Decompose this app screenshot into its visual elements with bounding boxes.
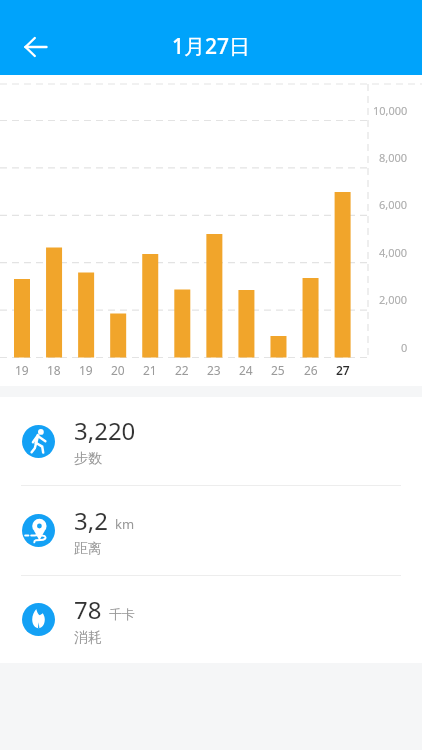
staticText: 20 [111,362,125,378]
staticText: 10,000 [373,103,408,118]
staticText: 18 [47,362,61,378]
staticText: 6,000 [379,197,408,212]
button[interactable]: 78 [0,576,422,663]
staticText: 27 [336,362,350,378]
staticText: km [115,515,135,533]
staticText: 23 [207,362,221,378]
staticText: 22 [175,362,189,378]
staticText: 21 [143,362,157,378]
staticText: 消耗 [74,629,102,647]
staticText: 24 [239,362,253,378]
staticText: 3,220 [74,414,136,447]
staticText: 1月27日 [172,32,251,61]
button[interactable]: 3,220 [0,397,422,485]
staticText: 4,000 [379,245,408,260]
staticText: 19 [15,362,29,378]
staticText: 26 [304,362,318,378]
staticText: 步数 [74,450,102,468]
staticText: 千卡 [109,606,135,622]
staticText: 25 [271,362,285,378]
staticText: 78 [74,593,102,626]
staticText: 2,000 [379,292,408,307]
button[interactable]: 3,2 [0,486,422,575]
button[interactable] [13,24,59,70]
staticText: 0 [401,340,408,355]
staticText: 19 [79,362,93,378]
staticText: 3,2 [74,504,108,537]
staticText: 距离 [74,540,102,558]
staticText: 8,000 [379,150,408,165]
